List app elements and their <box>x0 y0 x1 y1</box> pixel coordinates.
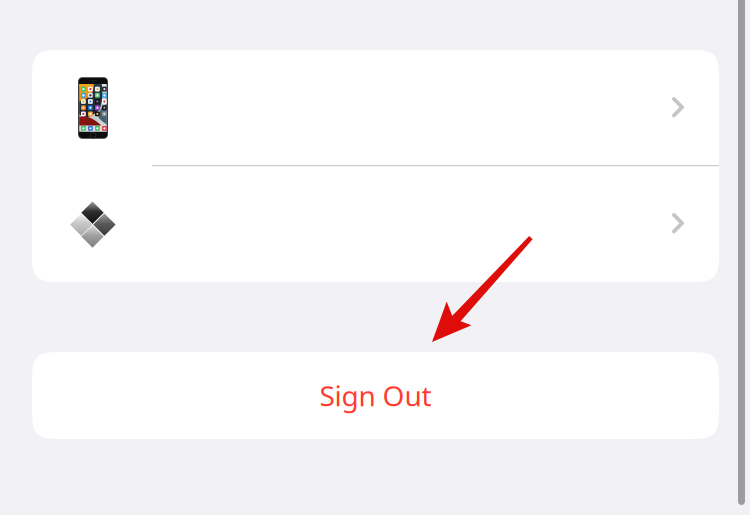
button[interactable]: Device <box>32 50 719 165</box>
staticText: Sign Out <box>319 377 431 414</box>
button[interactable]: Sign Out <box>32 352 719 439</box>
button[interactable]: Account <box>32 165 719 282</box>
